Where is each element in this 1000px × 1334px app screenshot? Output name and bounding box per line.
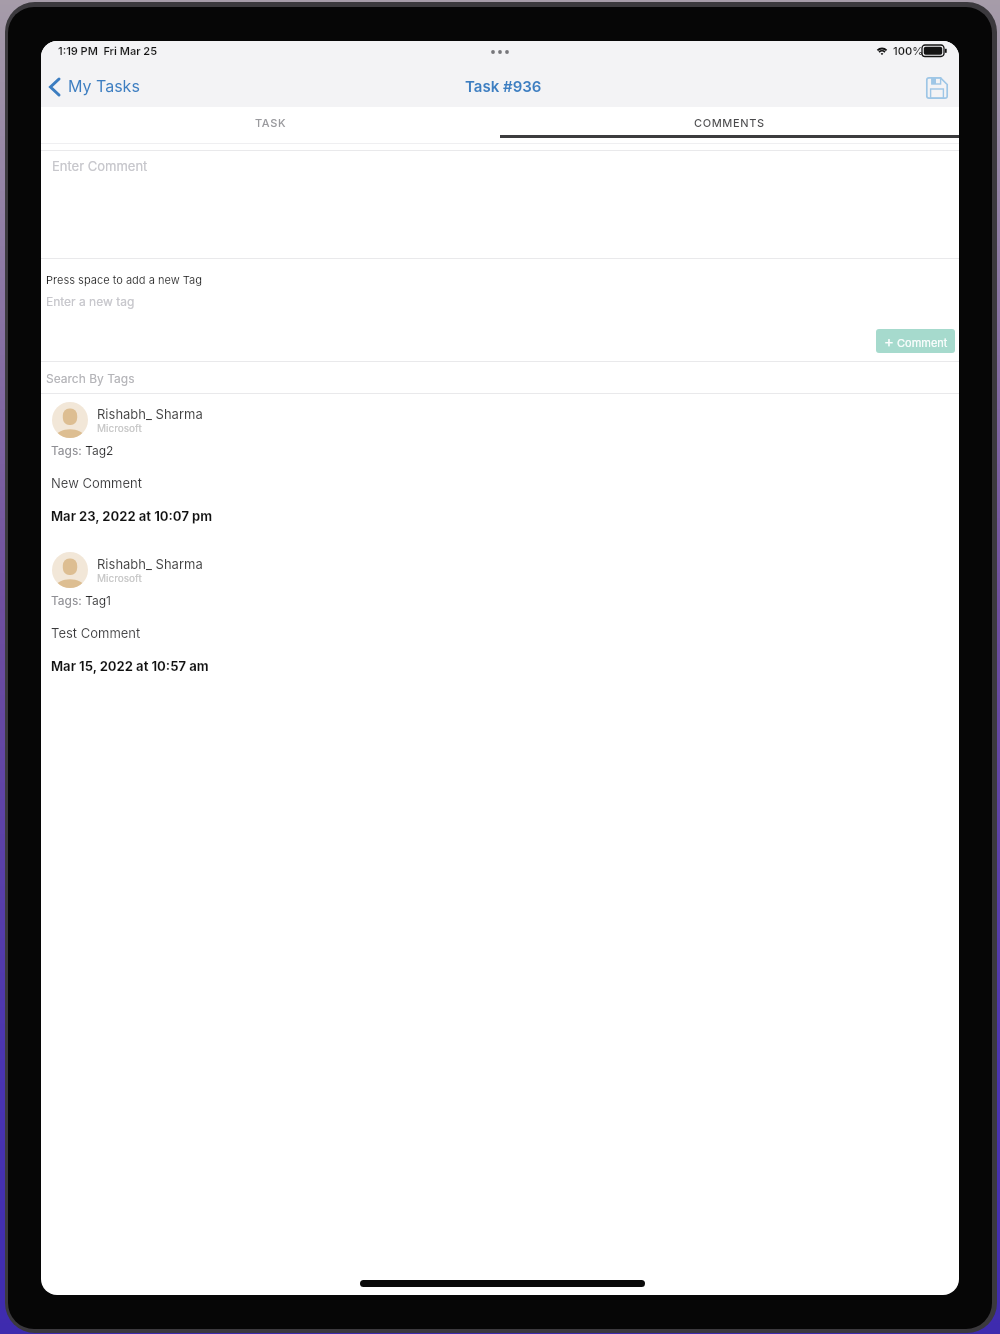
staticText: + Comment (884, 332, 948, 350)
staticText: Microsoft (97, 572, 142, 584)
staticText: 1:19 PM Fri Mar 25 (58, 44, 158, 57)
staticText: COMMENTS (694, 116, 765, 129)
staticText: Test Comment (51, 625, 141, 641)
staticText: Search By Tags (46, 371, 135, 386)
staticText: Enter a new tag (46, 294, 135, 309)
button[interactable] (920, 71, 952, 103)
staticText: Press space to add a new Tag (46, 273, 202, 286)
staticText: Tags: Tag2 (51, 443, 114, 458)
staticText: Mar 23, 2022 at 10:07 pm (51, 508, 213, 524)
staticText: My Tasks (68, 76, 140, 95)
button[interactable]: My Tasks (48, 71, 178, 103)
staticText: Rishabh_ Sharma (97, 556, 203, 572)
staticText: 100% (893, 44, 924, 57)
staticText: Enter Comment (52, 158, 148, 174)
button[interactable]: Enter Comment (41, 150, 959, 258)
staticText: Task #936 (465, 77, 542, 95)
staticText: Rishabh_ Sharma (97, 406, 203, 422)
button[interactable]: COMMENTS (500, 107, 959, 138)
button[interactable]: + Comment (876, 329, 955, 353)
staticText: New Comment (51, 475, 143, 491)
staticText: Tags: Tag1 (51, 593, 111, 608)
staticText: TASK (255, 116, 287, 129)
button[interactable]: TASK (41, 107, 500, 138)
staticText: Mar 15, 2022 at 10:57 am (51, 658, 209, 674)
staticText: Microsoft (97, 422, 142, 434)
